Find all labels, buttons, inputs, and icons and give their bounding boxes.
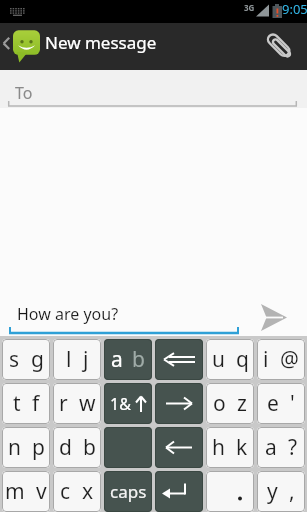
staticText: y bbox=[267, 477, 278, 506]
button[interactable]: c bbox=[53, 471, 101, 512]
staticText: ? bbox=[288, 433, 298, 462]
button[interactable] bbox=[104, 427, 152, 468]
staticText: e bbox=[267, 389, 279, 418]
staticText: t bbox=[13, 389, 21, 418]
staticText: 3G bbox=[244, 2, 255, 13]
staticText: r bbox=[59, 389, 68, 418]
button[interactable] bbox=[155, 471, 203, 512]
staticText: a bbox=[265, 433, 277, 462]
staticText: @ bbox=[280, 345, 299, 374]
staticText: b bbox=[132, 345, 145, 374]
staticText: s bbox=[9, 345, 20, 374]
button[interactable]: n bbox=[2, 427, 50, 468]
staticText: p bbox=[32, 433, 45, 462]
staticText: h bbox=[212, 433, 225, 462]
button[interactable]: i bbox=[257, 339, 305, 380]
button[interactable]: u bbox=[206, 339, 254, 380]
staticText: f bbox=[32, 389, 40, 418]
button[interactable]: l bbox=[53, 339, 101, 380]
staticText: c bbox=[60, 477, 71, 506]
button[interactable] bbox=[155, 427, 203, 468]
staticText: New message bbox=[45, 31, 157, 54]
button[interactable]: 1& bbox=[104, 383, 152, 424]
staticText: , bbox=[289, 477, 295, 506]
staticText: To bbox=[15, 82, 33, 104]
staticText: ' bbox=[290, 389, 295, 418]
staticText: v bbox=[36, 477, 47, 506]
staticText: u bbox=[212, 345, 225, 374]
staticText: 1& bbox=[110, 393, 131, 415]
staticText: o bbox=[213, 389, 226, 418]
button[interactable]: To bbox=[0, 70, 307, 108]
button[interactable]: s bbox=[2, 339, 50, 380]
staticText: l bbox=[66, 345, 72, 374]
staticText: z bbox=[237, 389, 247, 418]
button[interactable]: y bbox=[257, 471, 305, 512]
button[interactable] bbox=[155, 383, 203, 424]
button[interactable]: a bbox=[104, 339, 152, 380]
button[interactable]: a bbox=[257, 427, 305, 468]
button[interactable]: t bbox=[2, 383, 50, 424]
staticText: x bbox=[82, 477, 94, 506]
staticText: w bbox=[79, 389, 96, 418]
staticText: b bbox=[83, 433, 96, 462]
staticText: i bbox=[263, 345, 269, 374]
staticText: j bbox=[83, 345, 89, 374]
button[interactable]: r bbox=[53, 383, 101, 424]
button[interactable]: caps bbox=[104, 471, 152, 512]
staticText: 9:05 bbox=[282, 0, 307, 18]
button[interactable]: o bbox=[206, 383, 254, 424]
staticText: k bbox=[236, 433, 248, 462]
staticText: n bbox=[8, 433, 21, 462]
button[interactable]: m bbox=[2, 471, 50, 512]
staticText: d bbox=[59, 433, 72, 462]
staticText: q bbox=[236, 345, 249, 374]
button[interactable]: d bbox=[53, 427, 101, 468]
staticText: m bbox=[5, 477, 25, 506]
button[interactable] bbox=[206, 471, 254, 512]
button[interactable]: h bbox=[206, 427, 254, 468]
staticText: caps bbox=[110, 480, 147, 503]
button[interactable]: New message bbox=[0, 23, 307, 70]
button[interactable] bbox=[155, 339, 203, 380]
button[interactable]: How are you? bbox=[0, 294, 307, 336]
staticText: g bbox=[31, 345, 44, 374]
staticText: a bbox=[111, 345, 123, 374]
button[interactable]: e bbox=[257, 383, 305, 424]
staticText: How are you? bbox=[17, 303, 119, 325]
